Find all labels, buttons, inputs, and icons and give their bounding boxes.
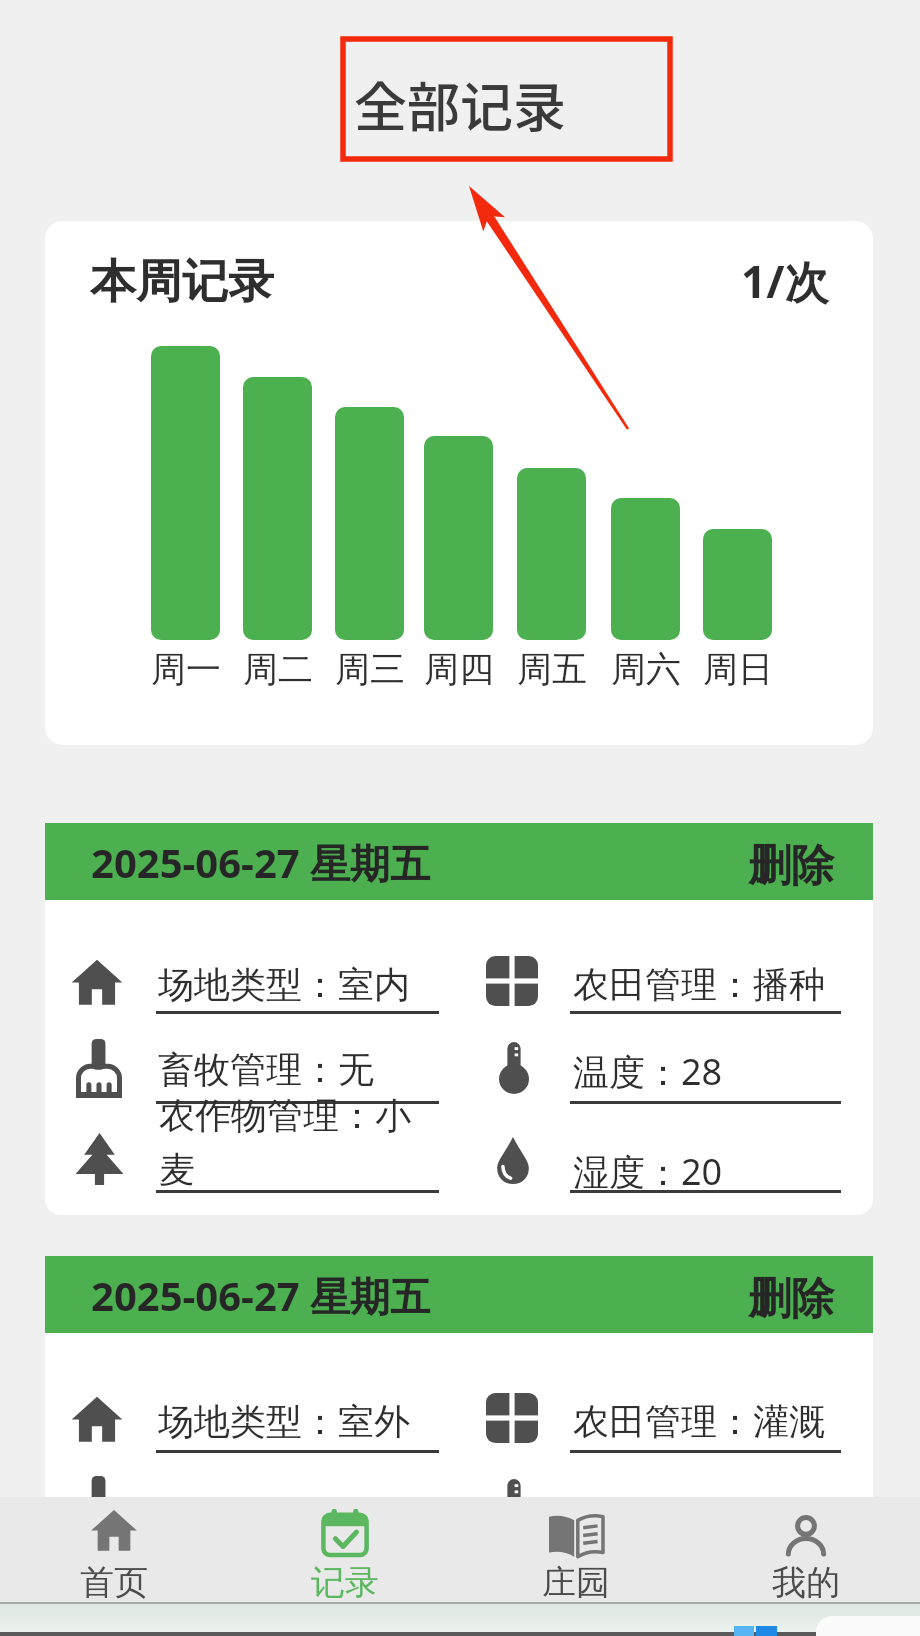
staticText: 周三 (335, 647, 405, 687)
staticText: 农田管理：播种 (573, 962, 825, 1007)
button[interactable]: 删除 (735, 1268, 847, 1330)
staticText: 周五 (517, 647, 587, 687)
staticText: 场地类型：室外 (158, 1399, 410, 1444)
staticText: 温度：28 (573, 1047, 723, 1096)
button[interactable] (45, 823, 873, 1215)
staticText: 农作物管理：小 (159, 1093, 411, 1138)
staticText: 全部记录 (354, 66, 566, 143)
button[interactable]: 首页 (42, 1500, 186, 1600)
staticText: 周日 (703, 647, 773, 687)
staticText: 记录 (311, 1561, 379, 1604)
staticText: 删除 (748, 1272, 834, 1326)
staticText: 2025-06-27 星期五 (91, 835, 431, 890)
staticText: 湿度：20 (573, 1147, 723, 1196)
button[interactable] (45, 221, 873, 745)
staticText: 周一 (151, 647, 221, 687)
staticText: 庄园 (542, 1561, 610, 1604)
button[interactable]: 记录 (273, 1500, 417, 1600)
staticText: 周二 (243, 647, 313, 687)
staticText: 我的 (772, 1561, 840, 1604)
staticText: 2025-06-27 星期五 (91, 1268, 431, 1323)
staticText: 农田管理：灌溉 (573, 1399, 825, 1444)
staticText: 周四 (424, 647, 494, 687)
staticText: 删除 (748, 839, 834, 893)
staticText: 麦 (159, 1147, 195, 1192)
button[interactable]: 庄园 (504, 1500, 648, 1600)
staticText: 本周记录 (90, 253, 274, 311)
button[interactable]: 我的 (734, 1500, 878, 1600)
button[interactable] (45, 1256, 873, 1556)
staticText: 1/次 (741, 251, 829, 311)
staticText: 周六 (611, 647, 681, 687)
button[interactable] (343, 39, 670, 159)
staticText: 畜牧管理：无 (158, 1047, 374, 1092)
staticText: 场地类型：室内 (158, 962, 410, 1007)
button[interactable]: 删除 (735, 835, 847, 897)
staticText: 首页 (80, 1561, 148, 1604)
